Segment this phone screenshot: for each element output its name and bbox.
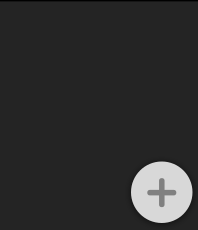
button[interactable]: Add (131, 161, 192, 223)
